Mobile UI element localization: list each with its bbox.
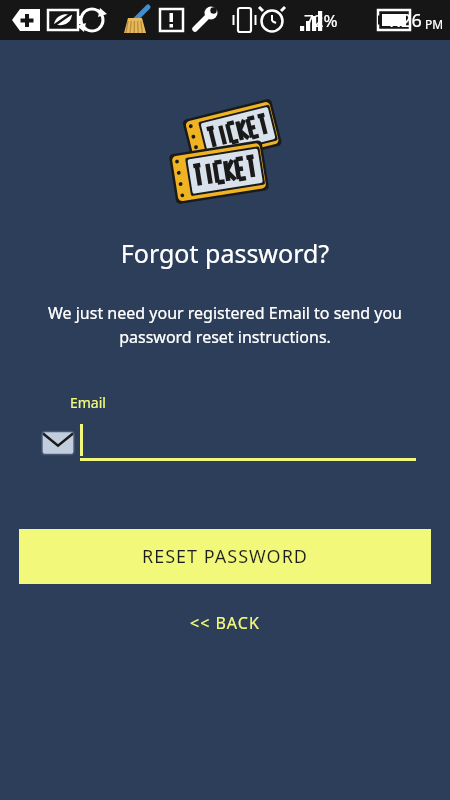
staticText: << BACK [190, 612, 260, 634]
staticText: We just need your registered Email to se… [24, 302, 426, 348]
button[interactable]: << BACK [172, 606, 278, 640]
staticText: RESET PASSWORD [142, 544, 308, 569]
other: Email [38, 427, 78, 459]
staticText: 72% [304, 9, 338, 32]
staticText: PM [425, 16, 444, 32]
staticText: Email [70, 393, 106, 412]
button[interactable]: Email [0, 424, 450, 461]
staticText: 1:26 [386, 8, 422, 33]
button[interactable]: RESET PASSWORD [19, 529, 431, 584]
staticText: Forgot password? [0, 236, 450, 270]
